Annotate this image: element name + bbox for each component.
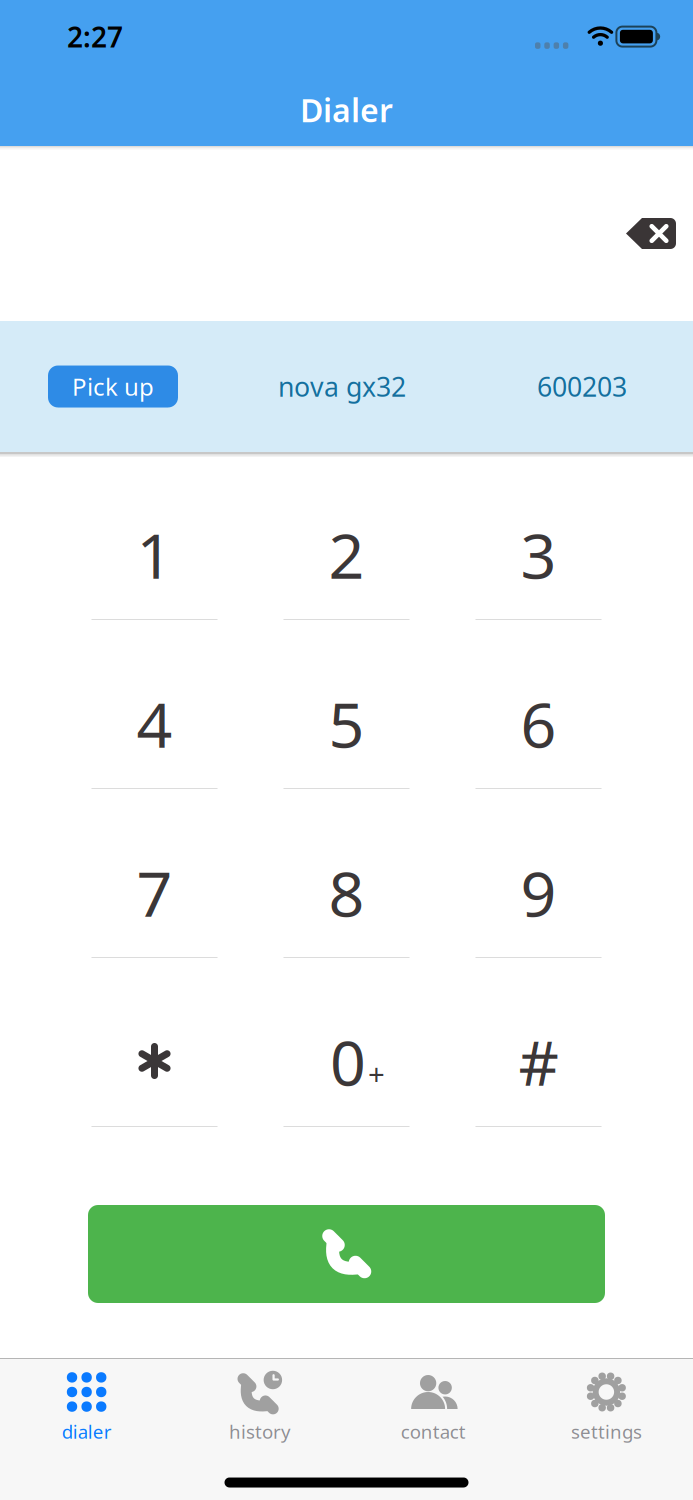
button[interactable]: contact [346, 1359, 520, 1444]
staticText: nova gx32 [278, 369, 406, 404]
staticText: Pick up [72, 371, 154, 402]
staticText: 600203 [537, 369, 627, 404]
staticText: 5 [328, 682, 364, 765]
staticText: 6 [520, 682, 556, 765]
staticText: dialer [62, 1419, 112, 1444]
staticText: 1 [136, 513, 172, 596]
staticText: 2:27 [67, 18, 123, 55]
button[interactable]: 7 [58, 790, 250, 958]
staticText: 8 [328, 851, 364, 934]
button[interactable]: history [173, 1359, 346, 1444]
button[interactable]: 1 [58, 452, 250, 620]
staticText: 0 [330, 1020, 366, 1103]
staticText: Dialer [300, 88, 393, 131]
staticText: 9 [520, 851, 556, 934]
button[interactable]: 4 [58, 621, 250, 789]
staticText: # [518, 1020, 558, 1103]
staticText: 2 [328, 513, 364, 596]
button[interactable]: settings [520, 1359, 693, 1444]
button[interactable]: 5 [250, 621, 442, 789]
button[interactable]: 9 [442, 790, 634, 958]
staticText: settings [571, 1419, 642, 1444]
button[interactable]: 0 [250, 959, 442, 1127]
button[interactable]: 6 [442, 621, 634, 789]
button[interactable] [58, 959, 250, 1127]
staticText: 7 [136, 851, 172, 934]
button[interactable]: 8 [250, 790, 442, 958]
button[interactable]: Delete [626, 218, 676, 249]
button[interactable]: Pick up [48, 365, 178, 407]
button[interactable]: # [442, 959, 634, 1127]
button[interactable]: 3 [442, 452, 634, 620]
staticText: history [229, 1419, 291, 1444]
button[interactable]: dialer [0, 1359, 173, 1444]
staticText: 3 [520, 513, 556, 596]
button[interactable]: Call [88, 1205, 605, 1303]
staticText: + [368, 1054, 385, 1093]
staticText: 4 [136, 682, 172, 765]
button[interactable]: 2 [250, 452, 442, 620]
staticText: contact [401, 1419, 466, 1444]
